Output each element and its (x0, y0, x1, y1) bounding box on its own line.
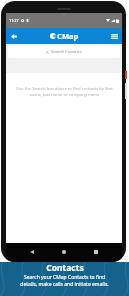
staticText: 11:27 (9, 18, 19, 23)
button[interactable]: Menu (106, 28, 122, 44)
staticText: Search Contacts (51, 49, 82, 55)
staticText: Use the Search box above to find contact… (16, 86, 113, 97)
button[interactable]: Back (27, 247, 37, 257)
staticText: CMap (57, 31, 79, 41)
button[interactable]: Recents (91, 247, 101, 257)
button[interactable]: Home (59, 247, 69, 257)
button[interactable]: Search Contacts (8, 46, 120, 58)
button[interactable]: Back (6, 28, 22, 44)
staticText: Search your CMap Contacts to find detail… (20, 274, 109, 287)
staticText: Contacts (46, 262, 84, 274)
